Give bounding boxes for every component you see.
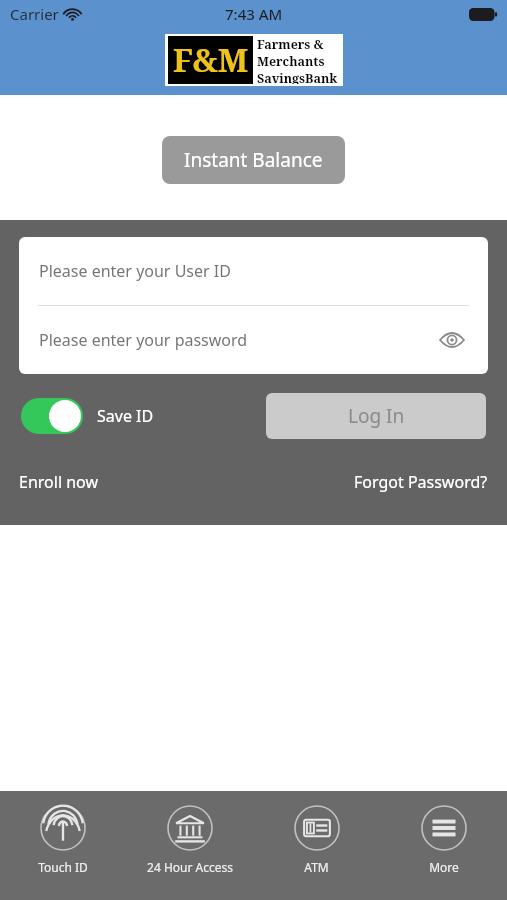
staticText: Please enter your password	[39, 329, 248, 351]
staticText: Forgot Password?	[354, 471, 488, 493]
button[interactable]: Show password	[436, 324, 468, 356]
staticText: F&M	[173, 38, 249, 82]
staticText: More	[429, 859, 459, 875]
button[interactable]: Please enter your password	[19, 306, 488, 374]
staticText: 7:43 AM	[225, 4, 283, 24]
button[interactable]: Forgot Password?	[354, 467, 488, 497]
button[interactable]: Save ID	[21, 398, 162, 434]
staticText: Touch ID	[38, 859, 88, 875]
staticText: Please enter your User ID	[39, 260, 231, 282]
staticText: Save ID	[97, 405, 154, 427]
button[interactable]: Enroll now	[19, 467, 98, 497]
button[interactable]: 24 Hour Access	[126, 791, 253, 900]
staticText: Enroll now	[19, 471, 98, 493]
button[interactable]: Log In	[266, 393, 486, 439]
button[interactable]: More	[380, 791, 507, 900]
staticText: SavingsBank	[257, 70, 338, 84]
staticText: Merchants	[257, 53, 325, 70]
staticText: Farmers &	[257, 36, 324, 53]
staticText: Carrier	[10, 4, 59, 24]
staticText: 24 Hour Access	[147, 859, 233, 875]
staticText: ATM	[304, 859, 329, 875]
button[interactable]: Touch ID	[0, 791, 126, 900]
button[interactable]: Instant Balance	[162, 136, 345, 184]
staticText: Instant Balance	[184, 147, 323, 173]
button[interactable]: Please enter your User ID	[19, 237, 488, 305]
button[interactable]: ATM	[253, 791, 380, 900]
staticText: Log In	[348, 403, 405, 429]
